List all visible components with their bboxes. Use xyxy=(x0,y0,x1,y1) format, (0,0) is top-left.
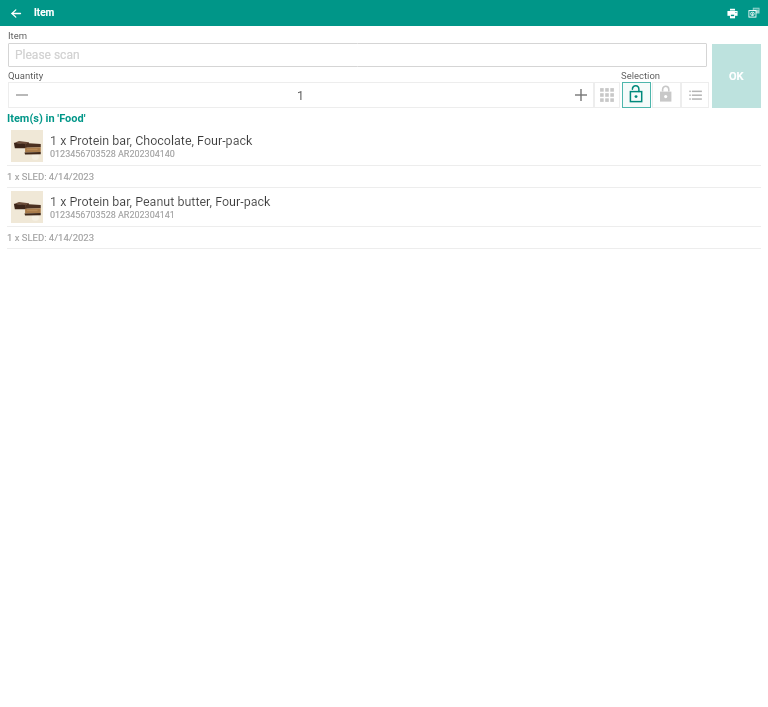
staticText: Item xyxy=(8,30,28,41)
button[interactable]: Print xyxy=(721,0,743,26)
button[interactable]: OK xyxy=(712,44,761,108)
button[interactable]: 1 x Protein bar, Chocolate, Four-pack xyxy=(0,130,768,162)
staticText: Quantity xyxy=(8,70,44,81)
staticText: Item(s) in 'Food' xyxy=(7,112,86,125)
button[interactable]: List view xyxy=(681,82,709,108)
button[interactable]: Back xyxy=(0,0,32,26)
staticText: 1 xyxy=(297,88,305,103)
button[interactable]: Decrease quantity xyxy=(8,82,35,108)
button[interactable]: Please scan xyxy=(8,43,707,67)
button[interactable]: Take photo xyxy=(743,0,765,26)
button[interactable]: Lock selection xyxy=(652,82,681,108)
button[interactable]: Increase quantity xyxy=(568,82,594,108)
staticText: 0123456703528 AR202304140 xyxy=(50,149,175,160)
staticText: Please scan xyxy=(15,48,80,62)
staticText: 1 x Protein bar, Peanut butter, Four-pac… xyxy=(50,194,271,209)
button[interactable]: Unlock selection xyxy=(622,82,651,108)
staticText: 1 x SLED: 4/14/2023 xyxy=(7,232,95,243)
button[interactable]: Keypad xyxy=(594,82,620,108)
staticText: 1 x Protein bar, Chocolate, Four-pack xyxy=(50,133,253,148)
staticText: Item xyxy=(34,7,55,19)
staticText: 1 x SLED: 4/14/2023 xyxy=(7,171,95,182)
staticText: 0123456703528 AR202304141 xyxy=(50,210,175,221)
button[interactable]: 1 x Protein bar, Peanut butter, Four-pac… xyxy=(0,191,768,223)
staticText: OK xyxy=(729,70,744,83)
staticText: Selection xyxy=(621,70,661,81)
